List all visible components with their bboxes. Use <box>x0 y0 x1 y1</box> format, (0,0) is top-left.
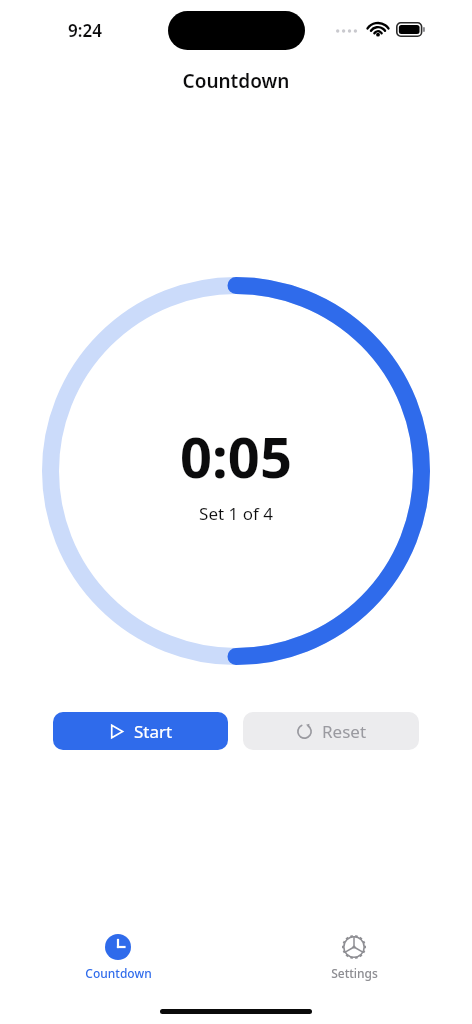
other: Countdown <box>105 934 131 960</box>
button[interactable]: Reset <box>243 712 419 750</box>
staticText: Countdown <box>85 965 152 981</box>
staticText: Set 1 of 4 <box>199 502 273 525</box>
button[interactable]: Countdown <box>0 930 236 985</box>
other: Settings <box>341 934 367 960</box>
staticText: Reset <box>322 720 367 743</box>
staticText: Start <box>134 720 173 743</box>
staticText: 9:24 <box>68 19 102 42</box>
button[interactable]: Start <box>53 712 228 750</box>
staticText: Countdown <box>0 68 472 94</box>
staticText: Settings <box>331 965 378 981</box>
button[interactable]: Settings <box>236 930 472 985</box>
staticText: 0:05 <box>180 418 292 494</box>
